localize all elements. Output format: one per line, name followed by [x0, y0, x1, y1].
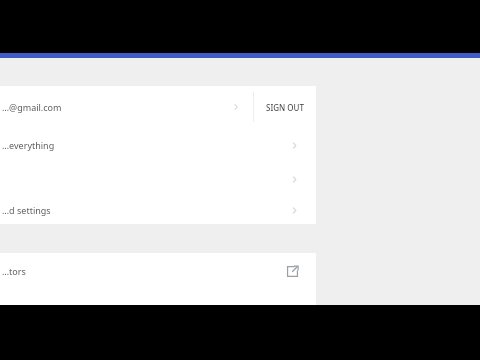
- button[interactable]: Open in new window: [282, 261, 302, 281]
- button[interactable]: SIGN OUT: [254, 86, 316, 128]
- button[interactable]: …tors: [0, 253, 316, 289]
- button[interactable]: …@gmail.com: [0, 86, 253, 128]
- button[interactable]: …everything: [0, 128, 316, 162]
- staticText: SIGN OUT: [266, 102, 305, 113]
- staticText: …everything: [2, 139, 289, 151]
- staticText: …tors: [2, 265, 282, 277]
- staticText: …d settings: [2, 204, 289, 216]
- button[interactable]: …d settings: [0, 196, 316, 224]
- staticText: …@gmail.com: [2, 101, 231, 113]
